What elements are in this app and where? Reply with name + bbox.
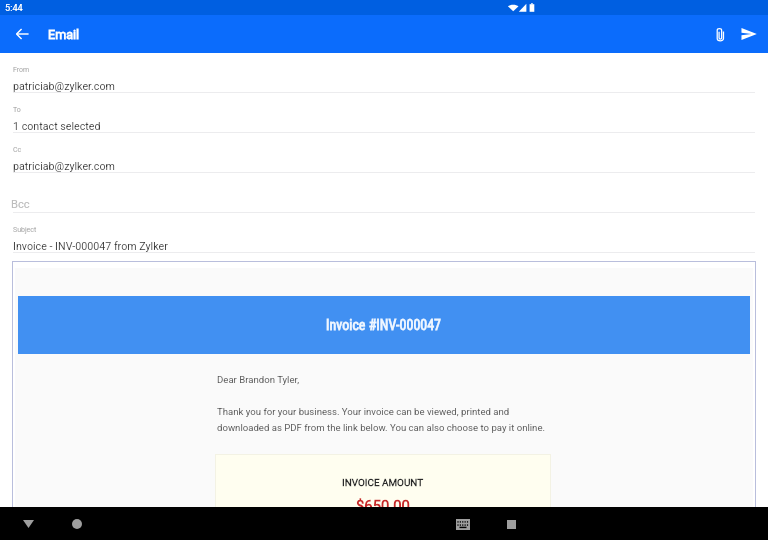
- staticText: $650.00: [356, 497, 410, 514]
- staticText: patriciab@zylker.com: [13, 160, 115, 173]
- staticText: Invoice #INV-000047: [326, 317, 442, 333]
- staticText: Dear Brandon Tyler,: [217, 374, 300, 385]
- staticText: Cc: [13, 146, 22, 154]
- staticText: Thank you for your business. Your invoic…: [217, 406, 546, 433]
- button[interactable]: Bcc: [0, 173, 768, 213]
- button[interactable]: Send: [735, 20, 763, 48]
- button[interactable]: Attach file: [706, 20, 734, 48]
- button[interactable]: Recent apps: [497, 510, 525, 538]
- button[interactable]: From: [0, 53, 768, 93]
- button[interactable]: Navigate back: [8, 20, 36, 48]
- staticText: 1 contact selected: [13, 120, 101, 133]
- button[interactable]: Subject: [0, 213, 768, 253]
- button[interactable]: To: [0, 93, 768, 133]
- staticText: Invoice - INV-000047 from Zylker: [13, 240, 168, 253]
- button[interactable]: Show keyboard: [449, 510, 477, 538]
- button[interactable]: Back: [14, 510, 42, 538]
- staticText: 5:44: [5, 2, 23, 13]
- staticText: INVOICE AMOUNT: [342, 477, 424, 489]
- staticText: patriciab@zylker.com: [13, 80, 115, 93]
- staticText: Subject: [13, 226, 37, 234]
- staticText: From: [13, 66, 30, 74]
- button[interactable]: Cc: [0, 133, 768, 173]
- staticText: Bcc: [11, 198, 30, 211]
- button[interactable]: Home: [63, 510, 91, 538]
- staticText: Email: [48, 27, 80, 42]
- staticText: To: [13, 106, 21, 114]
